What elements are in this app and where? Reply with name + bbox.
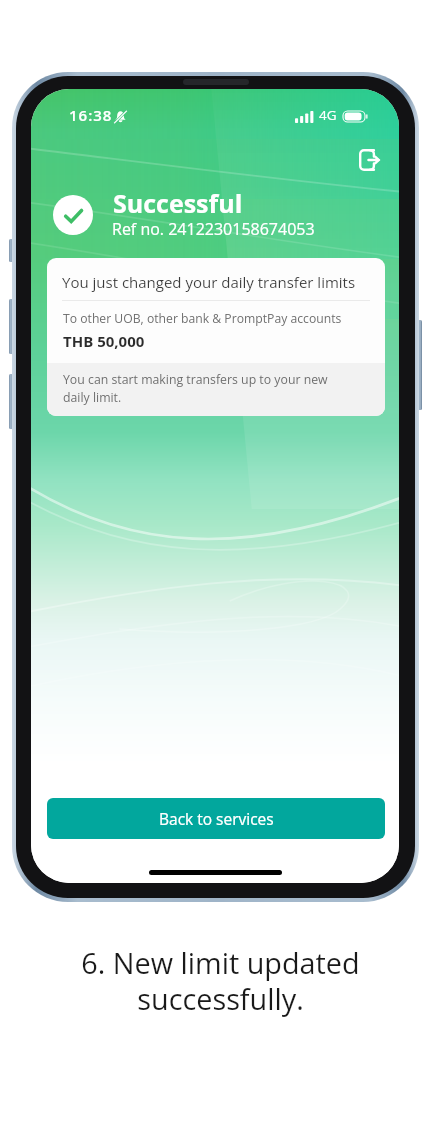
button[interactable]: Back to services <box>47 798 385 839</box>
button[interactable]: Log out <box>350 140 389 179</box>
staticText: 4G <box>319 106 337 124</box>
staticText: 6. New limit updated successfully. <box>2 943 437 1019</box>
staticText: 16:38 <box>69 105 113 125</box>
staticText: To other UOB, other bank & PromptPay acc… <box>63 310 342 327</box>
staticText: You just changed your daily transfer lim… <box>62 272 356 292</box>
staticText: THB 50,000 <box>63 331 145 351</box>
staticText: Ref no. 2412230158674053 <box>112 218 315 240</box>
staticText: You can start making transfers up to you… <box>63 371 353 405</box>
staticText: Successful <box>113 186 243 220</box>
staticText: Back to services <box>159 808 274 829</box>
